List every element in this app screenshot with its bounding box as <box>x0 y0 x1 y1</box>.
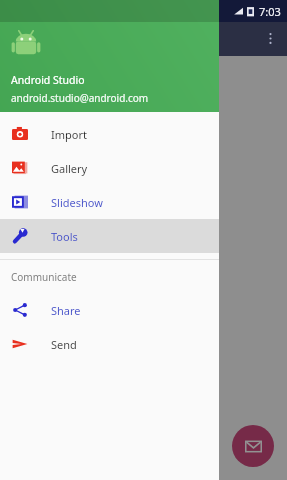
staticText: Import <box>51 127 87 142</box>
staticText: Send <box>51 337 77 352</box>
button[interactable]: Compose email <box>232 425 274 467</box>
button[interactable]: Gallery <box>0 151 219 185</box>
button[interactable]: Slideshow <box>0 185 219 219</box>
staticText: Share <box>51 303 81 318</box>
staticText: Gallery <box>51 161 88 176</box>
staticText: Android Studio <box>11 73 85 87</box>
staticText: android.studio@android.com <box>11 91 149 105</box>
button[interactable]: Share <box>0 293 219 327</box>
staticText: Communicate <box>11 270 77 284</box>
staticText: 7:03 <box>259 4 281 19</box>
staticText: Tools <box>51 229 78 244</box>
button[interactable]: Import <box>0 117 219 151</box>
button[interactable]: Tools <box>0 219 219 253</box>
staticText: Slideshow <box>51 195 103 210</box>
button[interactable]: More options <box>256 24 284 52</box>
button[interactable]: Send <box>0 327 219 361</box>
